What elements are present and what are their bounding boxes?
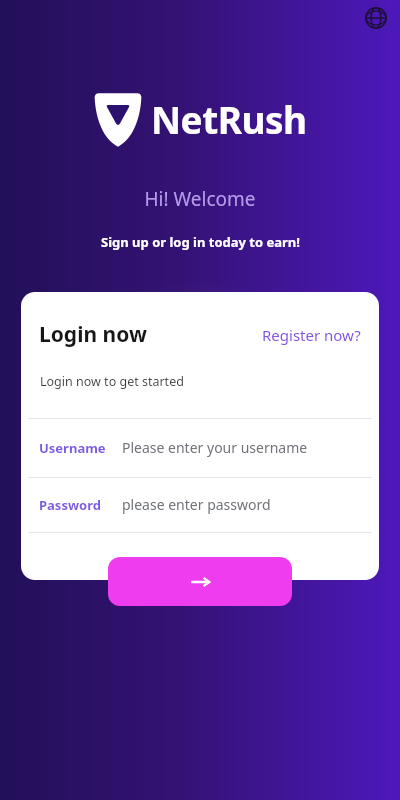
button[interactable]: Login now bbox=[39, 320, 147, 349]
staticText: Login now bbox=[39, 320, 147, 349]
staticText: Register now? bbox=[262, 325, 361, 345]
staticText: Please enter your username bbox=[122, 438, 308, 457]
staticText: Hi! Welcome bbox=[144, 186, 256, 212]
button[interactable]: Username bbox=[21, 418, 379, 477]
staticText: Username bbox=[39, 439, 106, 457]
button[interactable]: Continue bbox=[108, 557, 292, 606]
staticText: please enter password bbox=[122, 495, 271, 514]
button[interactable]: Register now? bbox=[262, 325, 361, 345]
staticText: Login now to get started bbox=[40, 373, 184, 390]
button[interactable]: Password bbox=[21, 477, 379, 532]
staticText: Sign up or log in today to earn! bbox=[101, 233, 300, 251]
staticText: Password bbox=[39, 496, 101, 514]
staticText: NetRush bbox=[151, 94, 307, 144]
button[interactable]: Language bbox=[360, 2, 392, 34]
